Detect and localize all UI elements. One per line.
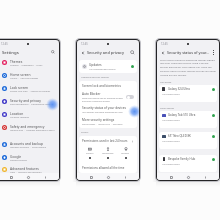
staticText: No threats found — [162, 140, 180, 143]
staticText: Security and privacy — [10, 98, 42, 102]
button[interactable]: Search — [129, 49, 136, 56]
staticText: 12:45 — [161, 42, 168, 46]
button[interactable]: Screen lock and biometrics — [79, 81, 137, 90]
staticText: Screen lock type · Always On Display — [10, 90, 51, 93]
staticText: Location — [121, 152, 130, 155]
button[interactable]: Auto Blocker toggle — [126, 95, 134, 99]
button[interactable]: Camera — [86, 147, 94, 159]
staticText: Face Recognition · Permissions usage — [10, 103, 52, 106]
button[interactable]: Galaxy S24 Ultra — [159, 85, 217, 102]
staticText: No threats found — [162, 119, 180, 122]
button[interactable]: Accounts and backup — [0, 138, 59, 151]
staticText: 12:45 — [81, 42, 88, 46]
staticText: Safety and emergency — [10, 124, 45, 128]
button[interactable]: Home — [25, 174, 31, 180]
button[interactable]: More security settings — [79, 116, 137, 128]
staticText: Galaxy Tab S10 Ultra — [168, 113, 196, 117]
staticText: Permissions used in last 24 hours — [82, 139, 128, 143]
staticText: Advanced features — [10, 166, 39, 170]
staticText: Secure Folder · Secure Wi-Fi · and more — [82, 123, 123, 126]
button[interactable]: Back — [202, 174, 208, 180]
staticText: Google services — [10, 159, 27, 162]
staticText: Knox Matrix monitors supported devices s… — [160, 58, 216, 77]
staticText: Updates — [89, 63, 102, 67]
staticText: Galaxy S24 Ultra — [168, 87, 190, 91]
button[interactable]: Location — [121, 147, 130, 159]
staticText: No recommended actions — [89, 68, 116, 71]
button[interactable]: Recents — [88, 174, 94, 180]
staticText: 65" Neo QLED 8K — [168, 134, 191, 138]
button[interactable]: Bespoke Family Hub — [159, 155, 217, 172]
button[interactable]: Home screen — [0, 69, 59, 82]
staticText: Labs · Motions and gestures — [10, 171, 42, 173]
staticText: Location — [10, 111, 24, 115]
staticText: Settings — [2, 49, 19, 55]
button[interactable]: 65" Neo QLED 8K — [159, 132, 217, 149]
button[interactable]: Back — [42, 174, 48, 180]
staticText: No threats found — [162, 93, 180, 96]
button[interactable]: Recents — [168, 174, 174, 180]
button[interactable]: Back — [161, 51, 165, 55]
staticText: Google — [10, 154, 22, 158]
button[interactable]: Microphone — [102, 147, 114, 159]
button[interactable]: Permissions used in last 24 hours — [79, 136, 137, 146]
button[interactable]: Security status of your devices — [79, 104, 137, 116]
staticText: Medical info · Wireless emergency alerts — [10, 129, 55, 132]
button[interactable]: More options — [211, 50, 216, 55]
button[interactable]: Advanced features — [0, 166, 59, 173]
button[interactable]: Home — [185, 174, 191, 180]
staticText: Lock screen — [10, 85, 29, 89]
staticText: Permissions allowed all the time — [82, 166, 125, 170]
button[interactable]: Back — [122, 174, 128, 180]
staticText: More security settings — [82, 118, 115, 122]
button[interactable]: Updates — [79, 60, 137, 73]
button[interactable]: Google — [0, 151, 59, 164]
staticText: Security status of your devices — [82, 106, 126, 110]
staticText: Security and privacy — [87, 50, 124, 55]
staticText: Camera — [86, 152, 94, 155]
button[interactable]: Themes — [0, 56, 59, 69]
button[interactable]: Lock screen — [0, 82, 59, 95]
staticText: Other devices — [160, 107, 175, 110]
staticText: Privacy — [81, 131, 89, 134]
button[interactable]: Galaxy Tab S10 Ultra — [159, 111, 217, 128]
staticText: 12:45 — [1, 42, 8, 46]
staticText: Accounts and backup — [10, 141, 44, 145]
staticText: Screen lock and biometrics — [82, 84, 121, 88]
button[interactable]: Permissions allowed all the time — [79, 162, 137, 173]
staticText: Microphone — [102, 152, 114, 155]
button[interactable]: Security and privacy — [0, 95, 59, 108]
button[interactable]: Safety and emergency — [0, 121, 59, 134]
button[interactable]: Back — [81, 51, 85, 55]
staticText: Your devices are being protected by Knox — [82, 111, 123, 114]
staticText: Auto Blocker — [82, 92, 101, 96]
staticText: Keep your phone safe by blocking threats… — [82, 97, 124, 103]
button[interactable]: Home — [105, 174, 111, 180]
button[interactable]: Search — [50, 49, 56, 55]
staticText: Home screen — [10, 72, 31, 76]
staticText: Additional security settings — [81, 76, 109, 79]
staticText: Bespoke Family Hub — [168, 157, 196, 161]
button[interactable]: Auto Blocker — [79, 90, 137, 104]
staticText: Location requests — [10, 116, 30, 119]
staticText: This phone — [160, 81, 172, 84]
staticText: No threats found — [162, 163, 180, 166]
button[interactable]: Location — [0, 108, 59, 121]
staticText: Themes — [10, 59, 23, 63]
staticText: Manage accounts · Smart Switch — [10, 146, 47, 149]
button[interactable]: Recents — [8, 174, 14, 180]
staticText: Security status of your... — [167, 50, 209, 55]
staticText: Layout · App icon badges — [10, 77, 39, 80]
staticText: Themes · Wallpapers · Icons — [10, 64, 43, 67]
